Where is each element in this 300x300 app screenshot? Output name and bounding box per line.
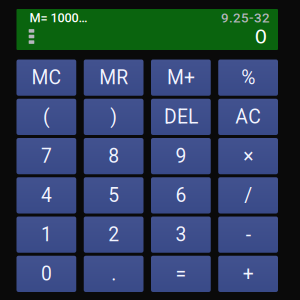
button[interactable]: . [84,256,144,292]
button[interactable]: × [218,138,278,174]
staticText: ) [110,105,117,128]
staticText: M= 1000… [29,11,87,25]
staticText: MC [31,66,61,89]
button[interactable]: 8 [84,138,144,174]
staticText: 0 [41,262,52,285]
button[interactable]: % [218,59,278,96]
staticText: MR [99,66,128,89]
button[interactable]: 1 [16,216,76,253]
staticText: - [246,223,251,246]
staticText: DEL [164,105,198,128]
button[interactable]: 3 [151,216,211,253]
button[interactable]: 2 [84,216,144,253]
staticText: ( [43,105,50,128]
button[interactable]: 0 [16,256,76,292]
button[interactable]: 7 [16,138,76,174]
staticText: = [175,262,186,285]
button[interactable]: ) [84,99,144,135]
staticText: 7 [41,145,52,167]
staticText: . [111,262,116,285]
button[interactable]: M+ [151,59,211,96]
staticText: 5 [108,184,119,207]
staticText: 9.25-32 [221,10,270,26]
staticText: 0 [254,25,267,48]
button[interactable]: - [218,216,278,253]
staticText: M+ [167,66,195,89]
staticText: 9 [175,145,186,167]
button[interactable]: 5 [84,177,144,213]
button[interactable]: 4 [16,177,76,213]
staticText: × [243,145,253,167]
button[interactable]: 9 [151,138,211,174]
button[interactable]: ( [16,99,76,135]
staticText: 4 [41,184,52,207]
staticText: 2 [108,223,119,246]
button[interactable]: + [218,256,278,292]
button[interactable]: DEL [151,99,211,135]
staticText: 6 [175,184,186,207]
staticText: % [241,66,255,89]
staticText: 3 [175,223,186,246]
staticText: 1 [41,223,52,246]
staticText: AC [235,105,261,128]
staticText: + [243,262,254,285]
staticText: 8 [108,145,119,167]
button[interactable]: / [218,177,278,213]
button[interactable]: More options [25,28,37,44]
button[interactable]: = [151,256,211,292]
button[interactable]: AC [218,99,278,135]
staticText: / [244,184,252,207]
button[interactable]: 6 [151,177,211,213]
button[interactable]: MC [16,59,76,96]
button[interactable]: MR [84,59,144,96]
